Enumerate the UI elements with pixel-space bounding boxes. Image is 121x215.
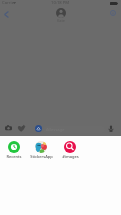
staticText: Recents [6,154,22,159]
button[interactable]: #images [57,141,83,158]
button[interactable]: StickersApp [28,141,54,158]
button[interactable]: App Store [32,122,44,134]
staticText: #images [62,154,79,159]
button[interactable]: Camera [2,122,14,134]
button[interactable]: Digital Touch [15,122,27,134]
button[interactable]: Kate [0,8,121,23]
button[interactable]: Record audio [105,122,117,134]
staticText: Carrier [2,0,16,6]
staticText: StickersApp [30,154,53,159]
button[interactable]: Back [0,8,12,21]
button[interactable]: Details [107,7,119,19]
staticText: 10:18 PM [51,0,70,6]
staticText: Kate [57,18,65,23]
button[interactable]: Recents [1,141,27,158]
